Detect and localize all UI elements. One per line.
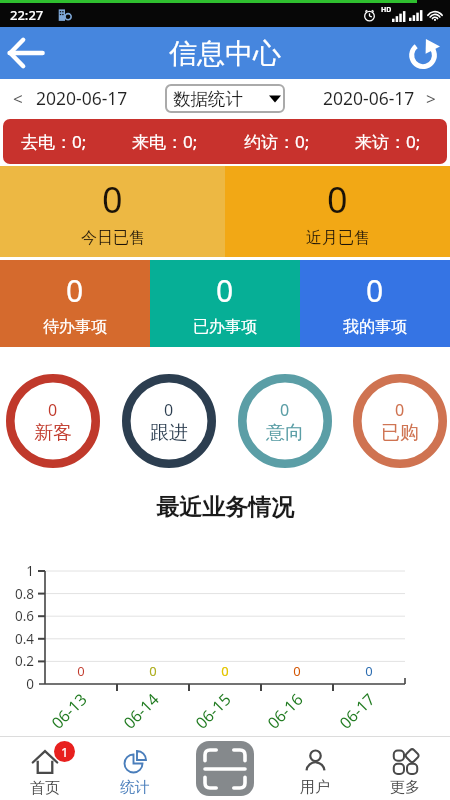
staticText: 1	[61, 743, 69, 761]
button[interactable]: 0	[150, 260, 300, 347]
staticText: 近月已售	[306, 228, 370, 248]
button[interactable]: Back	[0, 27, 50, 79]
staticText: 跟进	[150, 421, 188, 445]
staticText: 今日已售	[81, 228, 145, 248]
button[interactable]: <	[0, 86, 134, 110]
staticText: 0	[138, 662, 168, 680]
staticText: 0	[66, 270, 84, 311]
staticText: 信息中心	[169, 36, 281, 71]
button[interactable]: 0	[238, 374, 332, 468]
staticText: 0.6	[0, 607, 34, 625]
staticText: >	[426, 87, 436, 110]
button[interactable]: 统计	[90, 737, 180, 800]
staticText: 0	[280, 399, 290, 421]
staticText: 06-13	[46, 688, 92, 734]
staticText: 0	[102, 175, 123, 224]
button[interactable]: 数据统计	[165, 84, 285, 113]
button[interactable]: 0	[0, 166, 225, 257]
staticText: 已办事项	[193, 317, 257, 337]
button[interactable]: 更多	[360, 737, 450, 800]
button[interactable]: 用户	[270, 737, 360, 800]
staticText: 06-14	[118, 688, 164, 734]
staticText: 更多	[390, 778, 420, 797]
button[interactable]: 0	[225, 166, 450, 257]
staticText: 2020-06-17	[323, 86, 415, 110]
staticText: 首页	[30, 779, 60, 798]
button[interactable]: 0	[300, 260, 450, 347]
staticText: 06-15	[190, 688, 236, 734]
staticText: 06-17	[334, 688, 380, 734]
staticText: 数据统计	[173, 88, 243, 110]
staticText: 0.8	[0, 585, 34, 603]
staticText: 0	[354, 662, 384, 680]
button[interactable]: 1	[0, 737, 90, 800]
staticText: 0	[395, 399, 405, 421]
staticText: 0.2	[0, 652, 34, 670]
staticText: 已购	[381, 421, 419, 445]
staticText: 1	[0, 562, 34, 580]
button[interactable]: 0	[122, 374, 216, 468]
staticText: 0	[366, 270, 384, 311]
staticText: 0.4	[0, 630, 34, 648]
staticText: 统计	[120, 778, 150, 797]
staticText: 去电：0;	[21, 130, 87, 153]
staticText: 我的事项	[343, 317, 407, 337]
staticText: 0	[216, 270, 234, 311]
staticText: 06-16	[262, 688, 308, 734]
button[interactable]: 去电：0;	[3, 119, 447, 164]
staticText: 约访：0;	[244, 130, 310, 153]
staticText: 最近业务情况	[156, 493, 294, 522]
staticText: HD	[381, 5, 392, 15]
staticText: 意向	[266, 421, 304, 445]
staticText: 用户	[300, 778, 330, 797]
staticText: 0	[66, 662, 96, 680]
button[interactable]: 0	[6, 374, 100, 468]
button[interactable]: 0	[0, 260, 150, 347]
staticText: 2020-06-17	[36, 86, 128, 110]
staticText: 来访：0;	[355, 130, 421, 153]
button[interactable]: 2020-06-17	[317, 86, 450, 110]
staticText: 0	[210, 662, 240, 680]
staticText: 0	[0, 675, 34, 693]
staticText: 新客	[34, 421, 72, 445]
staticText: 22:27	[10, 6, 44, 24]
button[interactable]: Refresh	[398, 27, 450, 79]
staticText: 0	[164, 399, 174, 421]
staticText: 0	[327, 175, 348, 224]
staticText: <	[13, 87, 23, 110]
button[interactable]: 0	[353, 374, 447, 468]
staticText: 待办事项	[43, 317, 107, 337]
staticText: 0	[282, 662, 312, 680]
staticText: 0	[48, 399, 58, 421]
staticText: 来电：0;	[132, 130, 198, 153]
button[interactable]: Scan QR code	[180, 737, 270, 800]
